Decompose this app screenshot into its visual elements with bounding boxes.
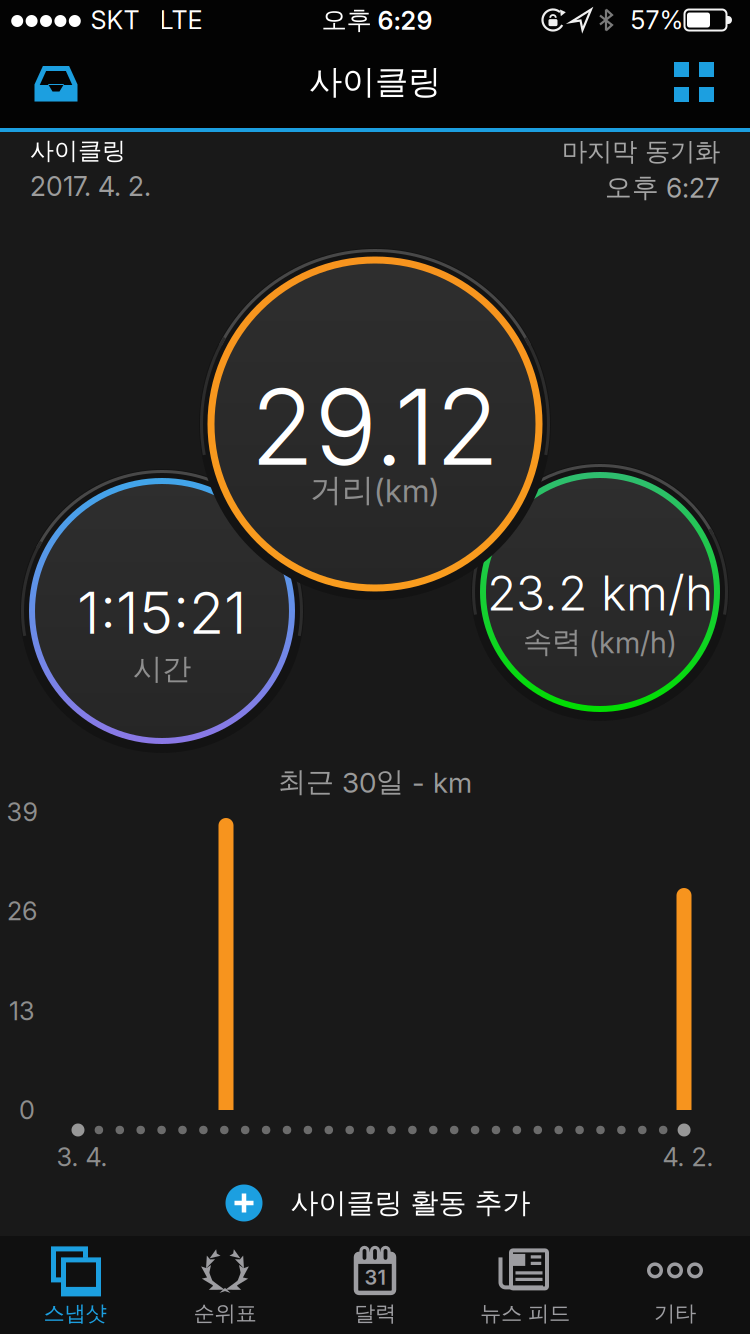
- staticText: 순위표: [193, 1300, 256, 1327]
- button[interactable]: [24, 50, 88, 114]
- staticText: 4. 2.: [662, 1142, 713, 1172]
- staticText: 29.12: [250, 366, 499, 488]
- staticText: 57%: [630, 5, 683, 35]
- staticText: 23.2 km/h: [487, 565, 713, 621]
- button[interactable]: 스냅샷: [2, 1241, 147, 1333]
- button[interactable]: 순위표: [152, 1241, 297, 1333]
- staticText: 사이클링: [309, 61, 441, 102]
- staticText: 사이클링 활동 추가: [290, 1186, 530, 1220]
- staticText: 사이클링: [30, 136, 126, 166]
- staticText: 오후 6:29: [321, 4, 432, 35]
- staticText: 0: [19, 1095, 35, 1125]
- staticText: 26: [7, 896, 37, 926]
- staticText: LTE: [159, 5, 202, 35]
- staticText: 스냅샷: [43, 1300, 106, 1327]
- staticText: 13: [9, 996, 35, 1026]
- staticText: 1:15:21: [77, 579, 247, 647]
- staticText: 속력 (km/h): [523, 624, 677, 660]
- button[interactable]: 기타: [602, 1241, 747, 1333]
- button[interactable]: 뉴스 피드: [452, 1241, 597, 1333]
- staticText: 39: [6, 797, 37, 827]
- staticText: 시간: [133, 651, 191, 687]
- staticText: 마지막 동기화: [562, 136, 720, 167]
- button[interactable]: 사이클링 활동 추가: [225, 1184, 530, 1221]
- staticText: 3. 4.: [56, 1142, 107, 1172]
- staticText: 달력: [354, 1300, 396, 1327]
- staticText: 오후 6:27: [605, 171, 720, 204]
- staticText: 31: [364, 1266, 385, 1289]
- button[interactable]: 31: [302, 1241, 447, 1333]
- staticText: 거리(km): [310, 470, 440, 510]
- staticText: SKT: [90, 5, 139, 35]
- button[interactable]: [662, 50, 726, 114]
- staticText: 최근 30일 - km: [278, 765, 472, 799]
- staticText: 기타: [654, 1300, 696, 1327]
- staticText: 2017. 4. 2.: [30, 170, 151, 202]
- staticText: 뉴스 피드: [480, 1300, 570, 1327]
